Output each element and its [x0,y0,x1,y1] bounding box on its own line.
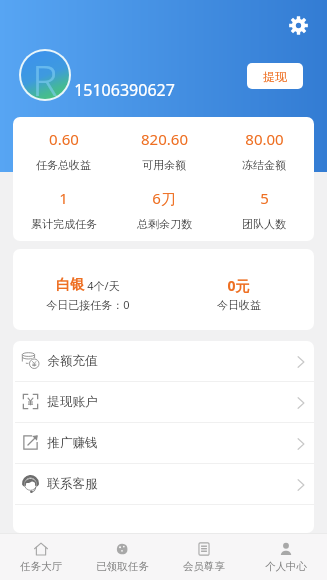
staticText: 任务大厅 [20,560,62,573]
button[interactable]: 联系客服 [13,464,314,505]
staticText: 团队人数 [242,217,286,231]
staticText: 1 [59,188,68,208]
staticText: 已领取任务 [96,560,149,573]
button[interactable]: 会员尊享 [163,534,245,580]
staticText: 5 [260,188,269,208]
staticText: 4个/天 [87,278,120,293]
staticText: 820.60 [141,129,188,149]
staticText: 6刀 [152,188,176,208]
button[interactable]: Settings [288,15,309,36]
staticText: R [32,51,58,98]
staticText: 总剩余刀数 [137,217,192,231]
button[interactable]: 推广赚钱 [13,423,314,464]
staticText: 个人中心 [265,560,307,573]
staticText: 累计完成任务 [31,217,97,231]
staticText: 提现 [263,69,287,84]
staticText: 推广赚钱 [47,435,98,451]
button[interactable]: 已领取任务 [81,534,163,580]
staticText: 今日收益 [217,298,261,312]
button[interactable]: Avatar [21,51,69,99]
staticText: 联系客服 [47,476,98,492]
staticText: 15106390627 [74,79,175,101]
button[interactable]: 个人中心 [245,534,327,580]
button[interactable]: 任务大厅 [0,534,81,580]
staticText: 80.00 [245,129,284,149]
staticText: 会员尊享 [183,560,225,573]
staticText: 可用余额 [142,158,186,172]
staticText: 白银 [56,276,84,294]
staticText: 0.60 [49,129,79,149]
staticText: 余额充值 [47,353,98,369]
button[interactable]: 提现账户 [13,382,314,423]
staticText: 提现账户 [47,394,98,410]
staticText: 0元 [227,276,250,295]
staticText: 冻结金额 [242,158,286,172]
staticText: 今日已接任务：0 [46,297,130,312]
staticText: 任务总收益 [36,158,91,172]
button[interactable]: 提现 [247,63,303,89]
button[interactable]: 余额充值 [13,341,314,382]
